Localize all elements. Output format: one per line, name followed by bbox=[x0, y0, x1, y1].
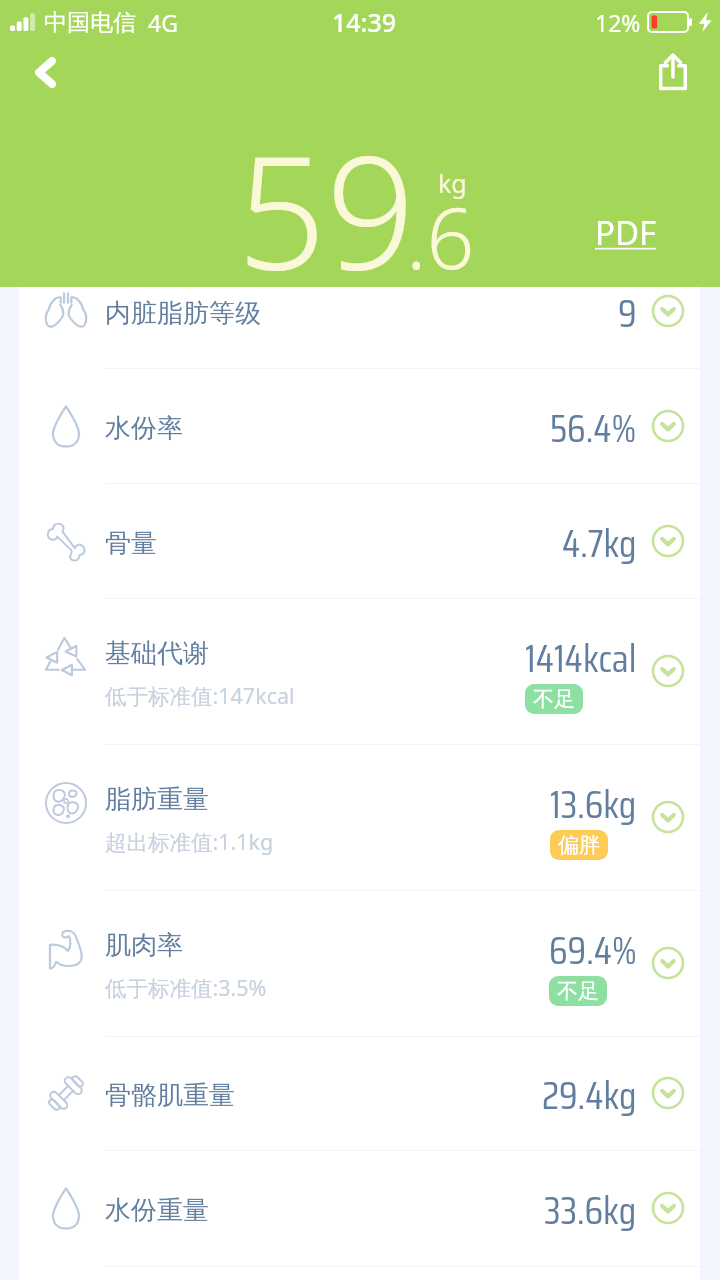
button[interactable]: 蛋白质 bbox=[19, 1266, 700, 1280]
staticText: 12% bbox=[595, 7, 641, 38]
button[interactable]: 水份率 bbox=[19, 368, 700, 483]
staticText: 不足 bbox=[557, 978, 599, 1004]
staticText: 29.4kg bbox=[542, 1065, 637, 1126]
staticText: 14:39 bbox=[332, 5, 397, 39]
button[interactable]: 肌肉率 bbox=[19, 890, 700, 1036]
staticText: 33.6kg bbox=[544, 1180, 637, 1241]
staticText: 不足 bbox=[533, 686, 575, 712]
staticText: 超出标准值:1.1kg bbox=[105, 827, 274, 856]
button[interactable]: 不足 bbox=[549, 976, 607, 1006]
staticText: 脂肪重量 bbox=[105, 783, 209, 816]
button[interactable]: 基础代谢 bbox=[19, 598, 700, 744]
staticText: 肌肉率 bbox=[105, 929, 183, 962]
button[interactable]: PDF bbox=[585, 203, 667, 262]
staticText: 内脏脂肪等级 bbox=[105, 297, 261, 330]
button[interactable]: Share bbox=[643, 42, 703, 102]
staticText: 骨量 bbox=[105, 527, 157, 560]
staticText: 4.7kg bbox=[562, 513, 637, 574]
button[interactable]: 内脏脂肪等级 bbox=[19, 253, 700, 368]
staticText: 中国电信 bbox=[44, 8, 136, 37]
staticText: 59 bbox=[237, 102, 416, 314]
staticText: 9 bbox=[618, 283, 637, 344]
staticText: 骨骼肌重量 bbox=[105, 1079, 235, 1112]
staticText: PDF bbox=[595, 210, 657, 255]
staticText: 水份重量 bbox=[105, 1194, 209, 1227]
button[interactable]: 偏胖 bbox=[550, 830, 608, 860]
button[interactable]: 骨量 bbox=[19, 483, 700, 598]
staticText: 水份率 bbox=[105, 412, 183, 445]
button[interactable]: Back bbox=[25, 43, 81, 99]
button[interactable]: 骨骼肌重量 bbox=[19, 1036, 700, 1150]
staticText: kg bbox=[438, 166, 467, 200]
staticText: 56.4% bbox=[550, 398, 637, 459]
staticText: 低于标准值:147kcal bbox=[105, 681, 295, 710]
staticText: 低于标准值:3.5% bbox=[105, 973, 267, 1002]
staticText: 4G bbox=[148, 7, 178, 38]
staticText: 13.6kg bbox=[550, 774, 637, 835]
button[interactable]: 不足 bbox=[525, 684, 583, 714]
button[interactable]: 水份重量 bbox=[19, 1150, 700, 1266]
button[interactable]: 脂肪重量 bbox=[19, 744, 700, 890]
staticText: 偏胖 bbox=[558, 832, 600, 858]
staticText: .6 bbox=[406, 179, 475, 293]
staticText: 1414kcal bbox=[525, 628, 637, 689]
staticText: 69.4% bbox=[549, 920, 637, 981]
staticText: 基础代谢 bbox=[105, 637, 209, 670]
